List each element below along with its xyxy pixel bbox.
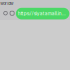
staticText: https://siyatamall.info/y/z/a: [18, 11, 67, 16]
button[interactable]: https://siyatamall.info/y/z/a: [16, 8, 69, 19]
staticText: worldw: [0, 1, 13, 6]
button[interactable]: Tabs: [9, 8, 16, 19]
button[interactable]: Reload: [2, 8, 9, 19]
button[interactable]: worldw: [0, 0, 16, 7]
